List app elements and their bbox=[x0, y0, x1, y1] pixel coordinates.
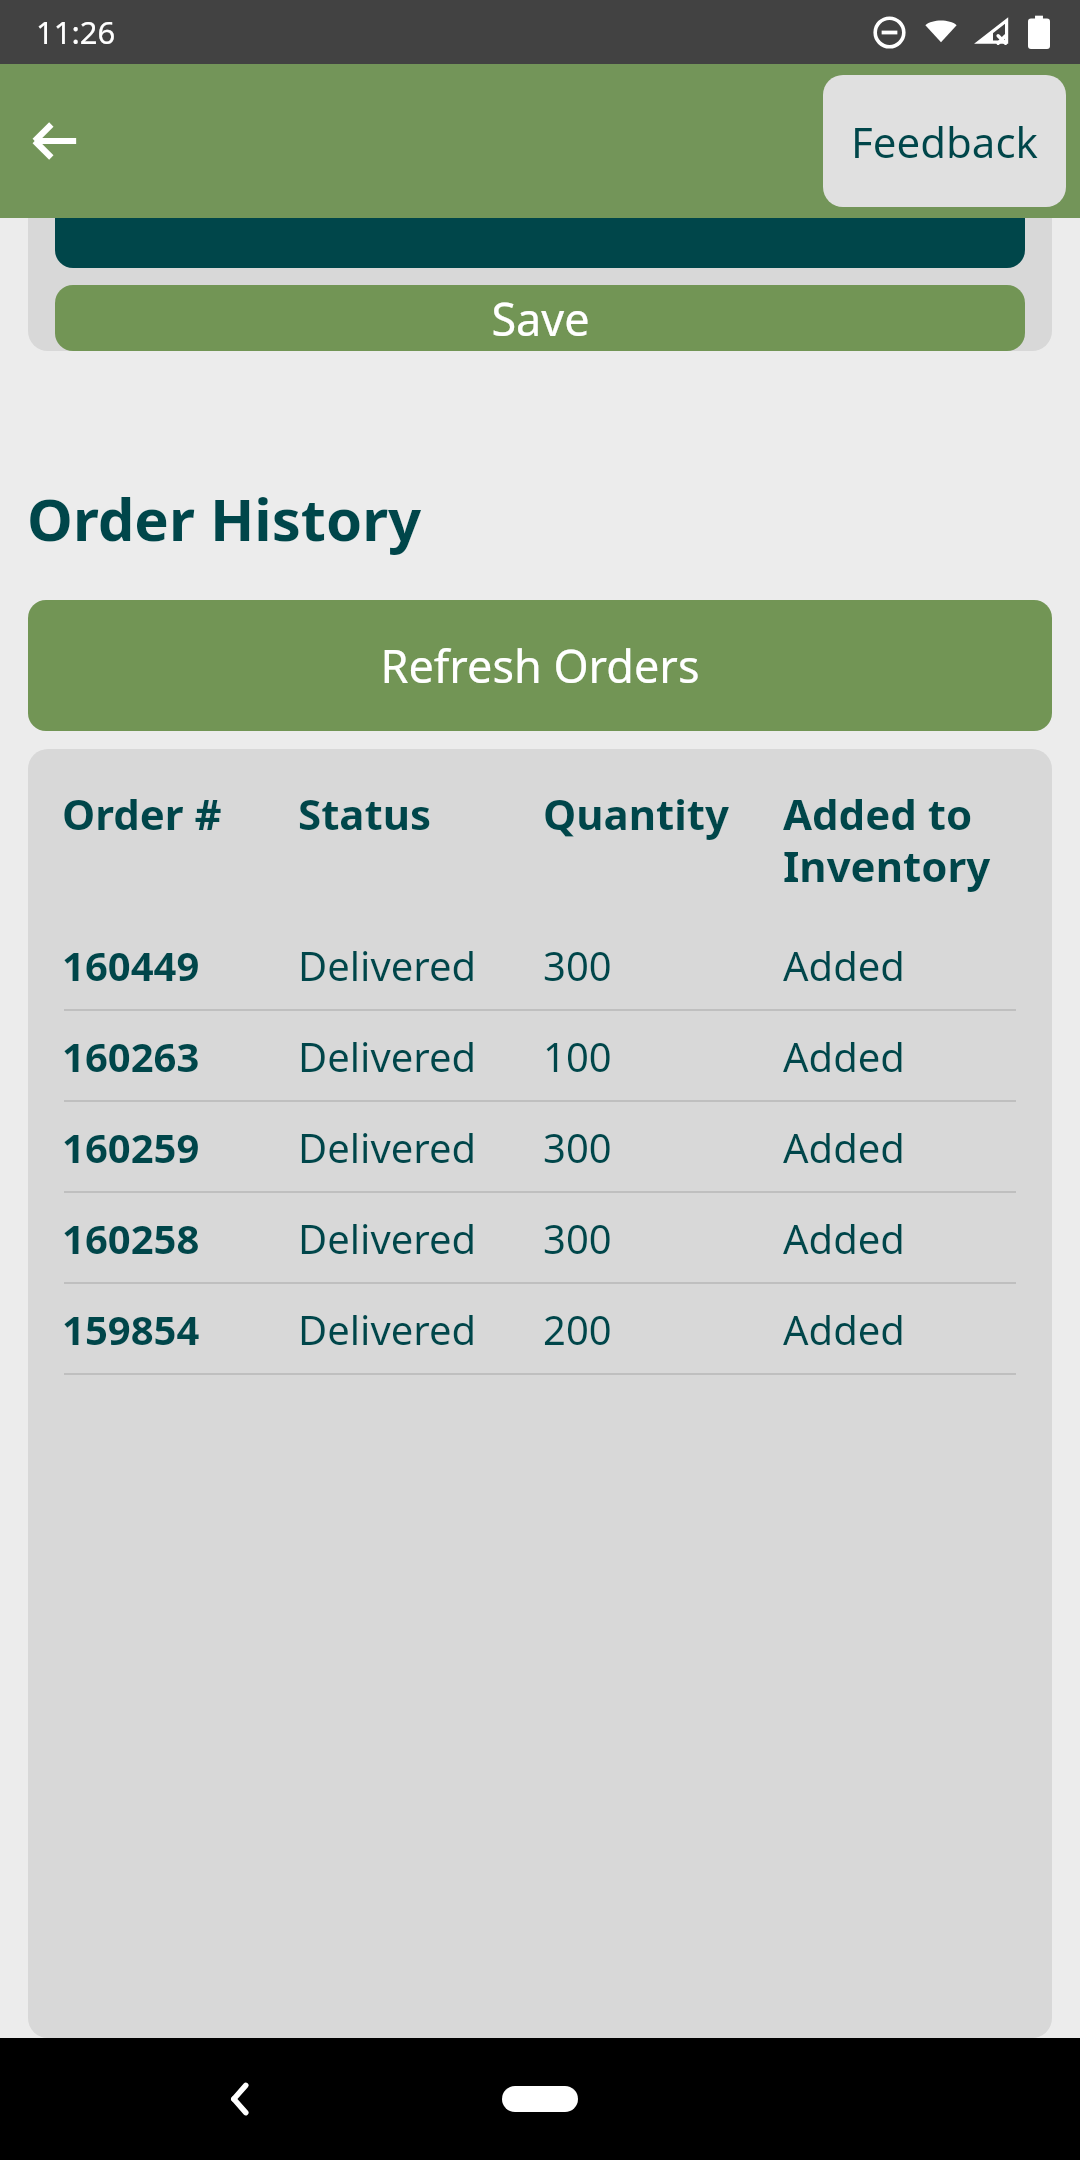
staticText: Quantity bbox=[543, 785, 783, 842]
staticText: Order # bbox=[62, 785, 298, 842]
staticText: Save bbox=[491, 288, 590, 349]
staticText: Feedback bbox=[851, 113, 1038, 170]
staticText: Added bbox=[783, 1302, 1018, 1356]
staticText: Delivered bbox=[298, 1211, 543, 1265]
staticText: 200 bbox=[543, 1302, 783, 1356]
staticText: Delivered bbox=[298, 938, 543, 992]
staticText: 300 bbox=[543, 1211, 783, 1265]
staticText: Delivered bbox=[298, 1120, 543, 1174]
staticText: 11:26 bbox=[36, 11, 116, 53]
staticText: Added bbox=[783, 1120, 1018, 1174]
button[interactable]: Refresh Orders bbox=[28, 600, 1052, 731]
button[interactable]: Back bbox=[196, 2054, 286, 2144]
staticText: 159854 bbox=[62, 1302, 298, 1356]
button[interactable]: 160449 bbox=[62, 920, 1018, 1009]
button[interactable] bbox=[55, 218, 1025, 268]
button[interactable]: Home bbox=[475, 2069, 605, 2129]
staticText: Added to Inventory bbox=[783, 785, 1018, 894]
staticText: 160449 bbox=[62, 938, 298, 992]
staticText: Delivered bbox=[298, 1302, 543, 1356]
staticText: Added bbox=[783, 1029, 1018, 1083]
staticText: 100 bbox=[543, 1029, 783, 1083]
staticText: Delivered bbox=[298, 1029, 543, 1083]
button[interactable]: Back bbox=[14, 100, 96, 182]
staticText: 300 bbox=[543, 1120, 783, 1174]
staticText: 160259 bbox=[62, 1120, 298, 1174]
staticText: Added bbox=[783, 1211, 1018, 1265]
button[interactable]: Save bbox=[55, 285, 1025, 351]
staticText: Added bbox=[783, 938, 1018, 992]
button[interactable]: 160263 bbox=[62, 1011, 1018, 1100]
button[interactable]: 160259 bbox=[62, 1102, 1018, 1191]
staticText: Order History bbox=[27, 479, 422, 558]
staticText: 160263 bbox=[62, 1029, 298, 1083]
button[interactable]: Feedback bbox=[823, 75, 1066, 207]
staticText: Refresh Orders bbox=[380, 635, 700, 696]
button[interactable]: 159854 bbox=[62, 1284, 1018, 1373]
staticText: 160258 bbox=[62, 1211, 298, 1265]
staticText: Status bbox=[298, 785, 543, 842]
staticText: 300 bbox=[543, 938, 783, 992]
button[interactable]: 160258 bbox=[62, 1193, 1018, 1282]
